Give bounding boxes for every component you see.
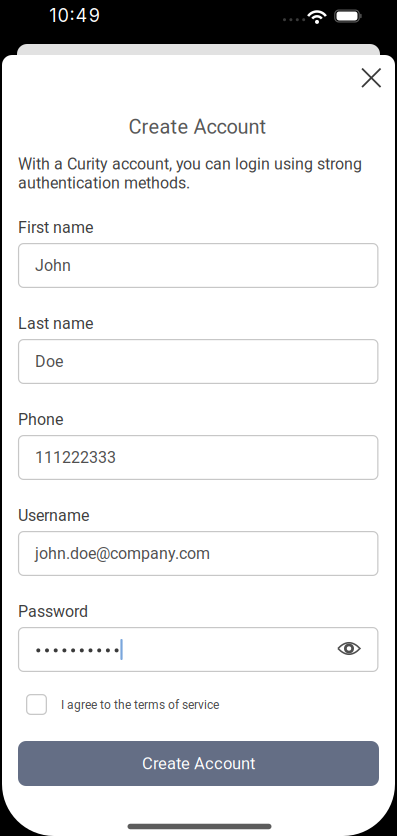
button[interactable]: Create Account bbox=[18, 741, 379, 786]
staticText: Password bbox=[18, 602, 88, 621]
staticText: Create Account bbox=[142, 754, 255, 773]
staticText: Last name bbox=[18, 314, 93, 333]
staticText: Phone bbox=[18, 410, 63, 429]
staticText: Username bbox=[18, 506, 89, 525]
staticText: With a Curity account, you can login usi… bbox=[18, 155, 362, 173]
staticText: john.doe@company.com bbox=[35, 544, 210, 563]
staticText: Create Account bbox=[128, 115, 266, 139]
staticText: 10:49 bbox=[49, 4, 100, 26]
staticText: First name bbox=[18, 218, 93, 237]
staticText: Doe bbox=[35, 352, 63, 371]
button[interactable]: Show password bbox=[327, 626, 371, 670]
staticText: authentication methods. bbox=[18, 174, 190, 192]
staticText: I agree to the terms of service bbox=[61, 698, 219, 712]
button[interactable]: Close bbox=[349, 56, 393, 100]
button[interactable]: I agree to the terms of service bbox=[18, 686, 379, 722]
staticText: 111222333 bbox=[35, 448, 116, 467]
staticText: John bbox=[35, 256, 71, 275]
